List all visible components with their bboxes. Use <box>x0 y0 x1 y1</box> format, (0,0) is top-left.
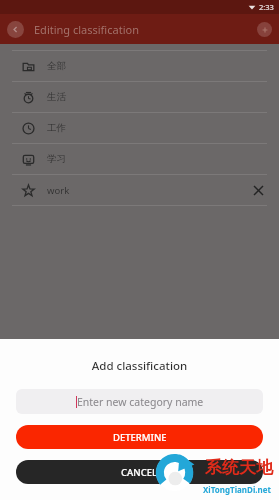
staticText: 生活 <box>47 91 66 103</box>
button[interactable]: DETERMINE <box>16 425 263 449</box>
staticText: Editing classification <box>34 22 139 37</box>
button[interactable]: CANCEL <box>16 460 263 484</box>
staticText: 学习 <box>47 153 66 165</box>
button[interactable]: 学习 <box>0 144 279 175</box>
staticText: Add classification <box>0 358 279 374</box>
staticText: 工作 <box>47 122 66 134</box>
button[interactable]: Enter new category name <box>16 389 263 414</box>
button[interactable]: Add classification <box>257 22 272 37</box>
staticText: Enter new category name <box>77 395 204 409</box>
staticText: 系统天地 <box>205 457 273 478</box>
staticText: CANCEL <box>121 466 158 479</box>
button[interactable]: Delete category <box>249 181 267 199</box>
staticText: 2:33 <box>259 2 274 12</box>
button[interactable]: Back <box>7 21 24 38</box>
staticText: DETERMINE <box>113 431 167 444</box>
button[interactable]: 工作 <box>0 113 279 144</box>
button[interactable]: 生活 <box>0 82 279 113</box>
button[interactable]: work <box>0 175 279 206</box>
button[interactable]: 全部 <box>0 51 279 82</box>
staticText: work <box>47 184 70 197</box>
staticText: XiTongTianDi.net <box>203 484 272 495</box>
staticText: 全部 <box>47 60 66 72</box>
